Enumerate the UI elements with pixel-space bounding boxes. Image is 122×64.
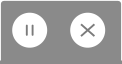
button[interactable]: Pause bbox=[12, 13, 47, 48]
button[interactable]: Close bbox=[70, 13, 105, 48]
